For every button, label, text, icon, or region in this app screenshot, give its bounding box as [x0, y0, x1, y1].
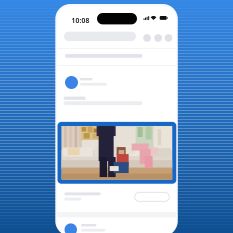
button[interactable]: Search	[64, 32, 136, 41]
button[interactable]: Messenger	[143, 34, 151, 42]
button[interactable]: Share	[135, 192, 169, 201]
button[interactable]: Notifications	[154, 34, 162, 42]
staticText: 10:08	[71, 16, 89, 25]
button[interactable]: Selected photo	[57, 122, 176, 184]
button[interactable]: Menu	[165, 34, 172, 42]
